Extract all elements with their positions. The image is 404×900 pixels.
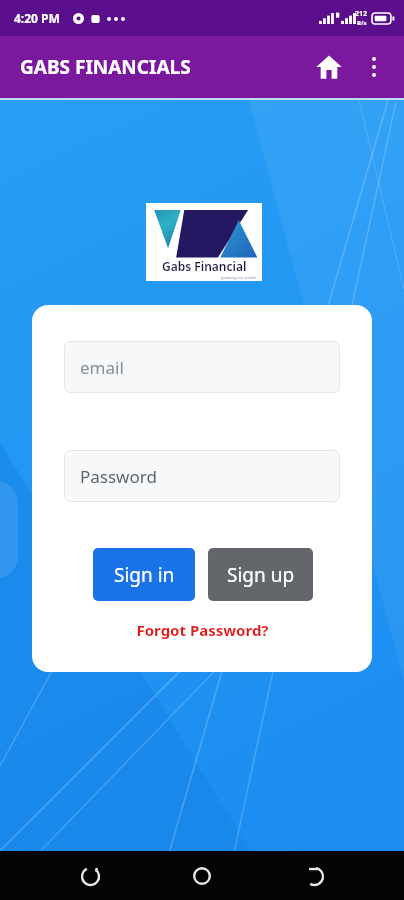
staticText: Sign up (227, 562, 295, 588)
staticText: Gabs Financial (162, 258, 247, 274)
button[interactable]: email (64, 341, 340, 393)
button[interactable]: Password (64, 450, 340, 502)
button[interactable]: Forgot Password? (32, 620, 372, 640)
staticText: email (80, 356, 124, 379)
button[interactable]: Home (306, 44, 352, 90)
staticText: Sign in (114, 562, 175, 588)
staticText: 4:20 PM (14, 10, 60, 26)
button[interactable]: More options (352, 45, 396, 89)
button[interactable]: Home (180, 854, 224, 898)
button[interactable]: Sign in (93, 548, 195, 601)
staticText: B/s (357, 19, 367, 27)
button[interactable]: Recent apps (68, 854, 112, 898)
staticText: Password (80, 465, 157, 488)
staticText: growing our youth (221, 275, 256, 280)
button[interactable]: Back (292, 854, 336, 898)
button[interactable]: Sign up (208, 548, 313, 601)
staticText: 212 (355, 9, 368, 19)
staticText: Forgot Password? (136, 620, 269, 640)
staticText: GABS FINANCIALS (20, 54, 191, 80)
